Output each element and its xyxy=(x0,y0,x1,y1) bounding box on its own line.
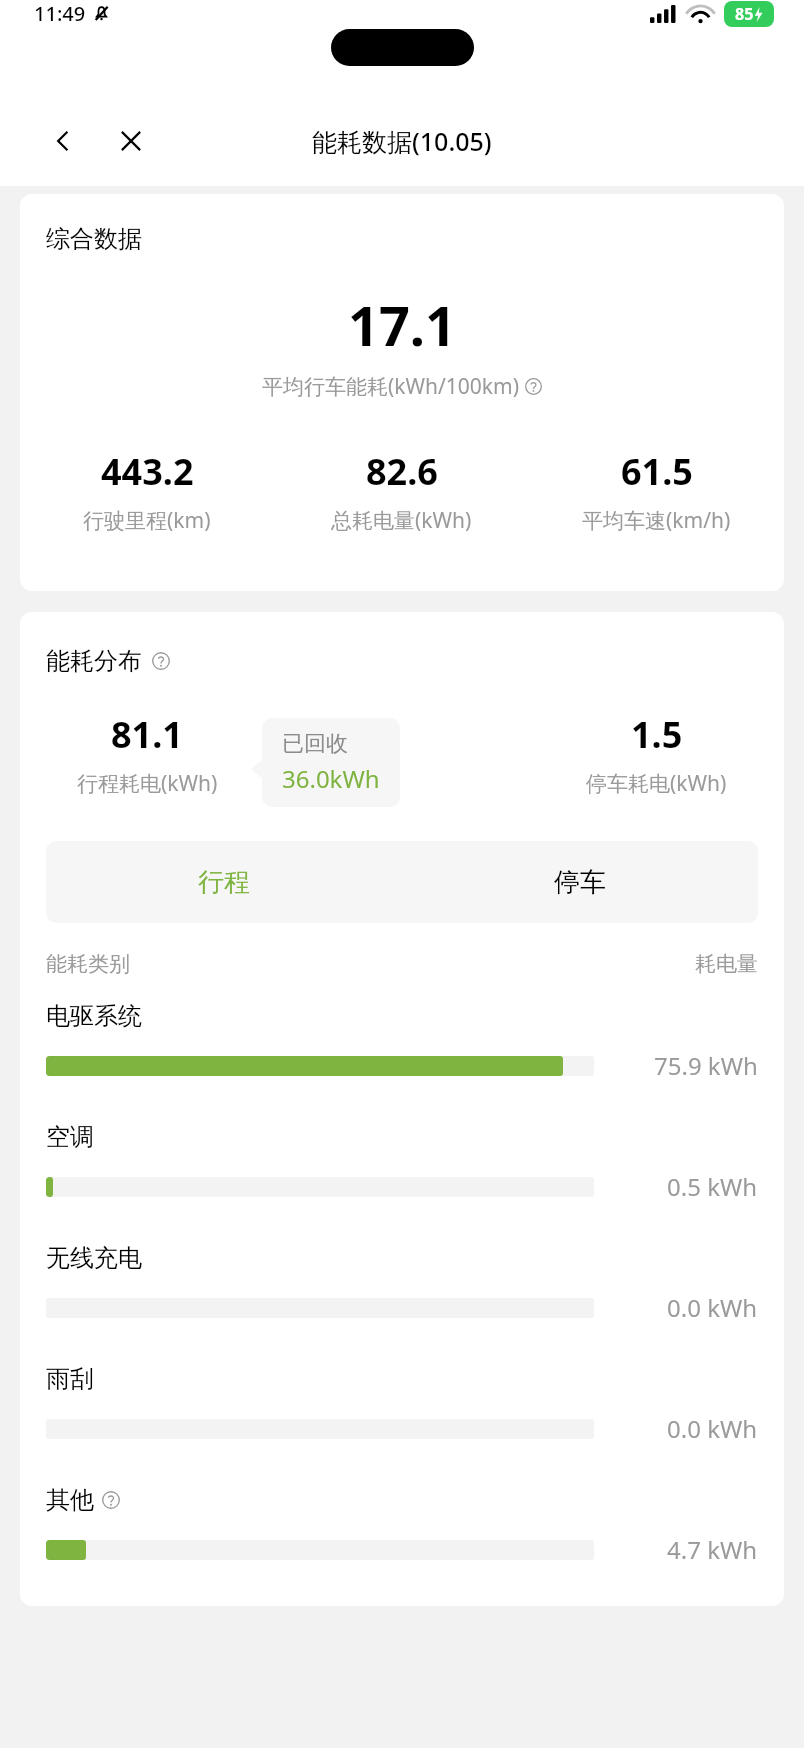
staticText: 行驶里程(km) xyxy=(83,506,211,535)
staticText: 总耗电量(kWh) xyxy=(331,506,472,535)
button[interactable]: 行程 xyxy=(46,841,402,923)
staticText: 能耗分布 xyxy=(46,646,142,676)
staticText: 11:49 xyxy=(34,0,86,27)
staticText: 17.1 xyxy=(20,288,784,362)
button[interactable]: Back xyxy=(40,118,86,164)
staticText: 0.0 kWh xyxy=(667,1291,758,1324)
staticText: 36.0kWh xyxy=(282,762,380,795)
staticText: 无线充电 xyxy=(46,1243,142,1273)
staticText: 0.5 kWh xyxy=(667,1170,758,1203)
staticText: 1.5 xyxy=(631,710,683,759)
staticText: 81.1 xyxy=(111,710,183,759)
staticText: 4.7 kWh xyxy=(667,1533,758,1566)
staticText: 82.6 xyxy=(366,447,438,496)
staticText: 行程 xyxy=(198,866,250,899)
staticText: 耗电量 xyxy=(695,951,758,977)
button[interactable]: Close xyxy=(108,118,154,164)
staticText: 85 xyxy=(735,3,754,25)
staticText: 雨刮 xyxy=(46,1364,94,1394)
staticText: 行程耗电(kWh) xyxy=(77,769,218,798)
staticText: 0.0 kWh xyxy=(667,1412,758,1445)
staticText: 平均车速(km/h) xyxy=(582,506,731,535)
staticText: 75.9 kWh xyxy=(654,1049,758,1082)
staticText: 61.5 xyxy=(621,447,693,496)
staticText: 平均行车能耗(kWh/100km) xyxy=(262,372,520,401)
staticText: 电驱系统 xyxy=(46,1001,142,1031)
staticText: 能耗数据(10.05) xyxy=(312,124,492,158)
staticText: 能耗类别 xyxy=(46,951,130,977)
staticText: 停车 xyxy=(554,866,606,899)
staticText: 空调 xyxy=(46,1122,94,1152)
staticText: 已回收 xyxy=(282,730,348,758)
button[interactable]: 停车 xyxy=(402,841,758,923)
staticText: 其他 xyxy=(46,1485,94,1515)
staticText: 综合数据 xyxy=(46,224,142,254)
staticText: 停车耗电(kWh) xyxy=(586,769,727,798)
staticText: 443.2 xyxy=(101,447,194,496)
